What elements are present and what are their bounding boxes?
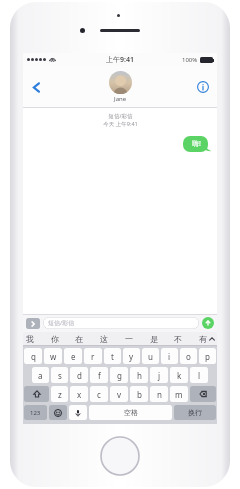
button[interactable]: y (123, 348, 140, 364)
staticText: 100% (182, 56, 198, 64)
button[interactable]: 是 (150, 334, 158, 344)
staticText: v (117, 389, 122, 400)
button[interactable]: e (64, 348, 82, 364)
button[interactable]: d (70, 367, 88, 383)
button[interactable]: l (190, 367, 208, 383)
staticText: 短信/彩信 (108, 112, 133, 120)
staticText: f (98, 370, 101, 381)
button[interactable]: 你 (51, 334, 59, 344)
staticText: 这 (100, 334, 108, 344)
staticText: 换行 (188, 408, 202, 417)
button[interactable]: 换行 (174, 405, 216, 420)
button[interactable]: 这 (100, 334, 108, 344)
button[interactable]: Backspace (190, 386, 216, 402)
staticText: s (58, 370, 62, 381)
button[interactable]: r (84, 348, 102, 364)
button[interactable]: Jane (109, 71, 132, 103)
staticText: g (117, 370, 122, 381)
staticText: e (71, 351, 76, 362)
staticText: q (31, 351, 36, 362)
staticText: d (77, 370, 82, 381)
staticText: 短信/彩信 (48, 319, 75, 327)
staticText: j (158, 370, 161, 381)
button[interactable]: Dictate (69, 405, 87, 420)
button[interactable]: a (32, 367, 49, 383)
staticText: Jane (114, 95, 127, 103)
staticText: b (137, 389, 142, 400)
staticText: 嗨! (192, 139, 201, 149)
button[interactable]: 不 (174, 334, 182, 344)
staticText: 上午9:41 (106, 55, 134, 65)
staticText: 是 (150, 334, 158, 344)
button[interactable]: u (142, 348, 159, 364)
button[interactable]: f (90, 367, 108, 383)
staticText: 有 (199, 334, 207, 344)
staticText: c (97, 389, 101, 400)
button[interactable]: Shift (24, 386, 49, 402)
button[interactable]: i (161, 348, 178, 364)
button[interactable]: 123 (24, 405, 47, 420)
staticText: h (137, 370, 142, 381)
button[interactable]: o (180, 348, 197, 364)
staticText: 不 (174, 334, 182, 344)
button[interactable]: q (24, 348, 42, 364)
staticText: m (175, 389, 183, 400)
button[interactable]: h (130, 367, 148, 383)
staticText: y (129, 351, 134, 362)
staticText: l (198, 370, 201, 381)
staticText: i (168, 351, 171, 362)
button[interactable]: 空格 (89, 405, 172, 420)
staticText: o (186, 351, 191, 362)
button[interactable]: Expand candidates (207, 334, 217, 344)
button[interactable]: Back (25, 76, 47, 98)
staticText: 你 (51, 334, 59, 344)
staticText: n (157, 389, 162, 400)
staticText: w (50, 351, 57, 362)
button[interactable]: s (51, 367, 68, 383)
staticText: 我 (26, 334, 34, 344)
button[interactable]: p (199, 348, 216, 364)
button[interactable]: 有 (199, 334, 207, 344)
button[interactable]: More (26, 318, 40, 329)
staticText: t (111, 351, 114, 362)
staticText: 今天 上午9:41 (103, 120, 138, 128)
button[interactable]: b (130, 386, 148, 402)
staticText: 123 (30, 409, 41, 417)
button[interactable]: 短信/彩信 (43, 317, 199, 329)
staticText: 一 (125, 334, 133, 344)
button[interactable]: j (150, 367, 168, 383)
staticText: z (58, 389, 62, 400)
button[interactable]: n (150, 386, 168, 402)
staticText: a (38, 370, 43, 381)
staticText: r (91, 351, 95, 362)
staticText: u (148, 351, 153, 362)
button[interactable]: m (170, 386, 188, 402)
button[interactable]: 我 (26, 334, 34, 344)
button[interactable]: Emoji (49, 405, 67, 420)
button[interactable]: 在 (75, 334, 83, 344)
button[interactable]: c (90, 386, 108, 402)
button[interactable]: Send (202, 317, 214, 329)
button[interactable]: k (170, 367, 188, 383)
staticText: k (177, 370, 182, 381)
button[interactable]: w (44, 348, 62, 364)
button[interactable]: g (110, 367, 128, 383)
button[interactable]: v (110, 386, 128, 402)
staticText: 在 (75, 334, 83, 344)
staticText: x (77, 389, 82, 400)
button[interactable]: t (104, 348, 121, 364)
button[interactable]: Details (193, 77, 213, 97)
staticText: 空格 (124, 408, 138, 417)
staticText: p (205, 351, 210, 362)
button[interactable]: x (70, 386, 88, 402)
button[interactable]: z (51, 386, 68, 402)
button[interactable]: 一 (125, 334, 133, 344)
